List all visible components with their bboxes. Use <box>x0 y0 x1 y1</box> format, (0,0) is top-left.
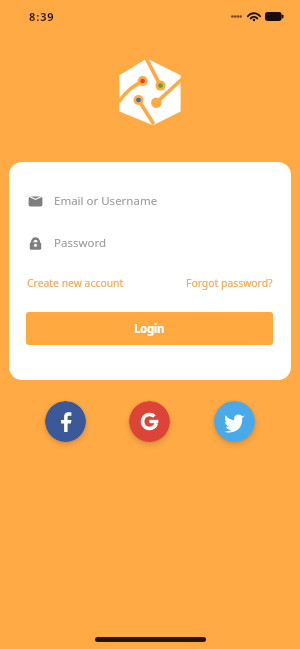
button[interactable]: Create new account <box>27 276 124 290</box>
button[interactable]: Forgot password? <box>186 276 273 290</box>
button[interactable]: Password <box>9 232 291 254</box>
button[interactable]: Email or Username <box>9 190 291 212</box>
button[interactable]: Sign in with Facebook <box>45 401 86 442</box>
button[interactable]: Sign in with Twitter <box>214 401 255 442</box>
staticText: Login <box>134 321 165 337</box>
staticText: Password <box>54 235 107 251</box>
staticText: 8:39 <box>29 9 55 24</box>
button[interactable]: Sign in with Google <box>129 401 170 442</box>
button[interactable]: Login <box>26 312 273 345</box>
staticText: Email or Username <box>54 193 158 209</box>
